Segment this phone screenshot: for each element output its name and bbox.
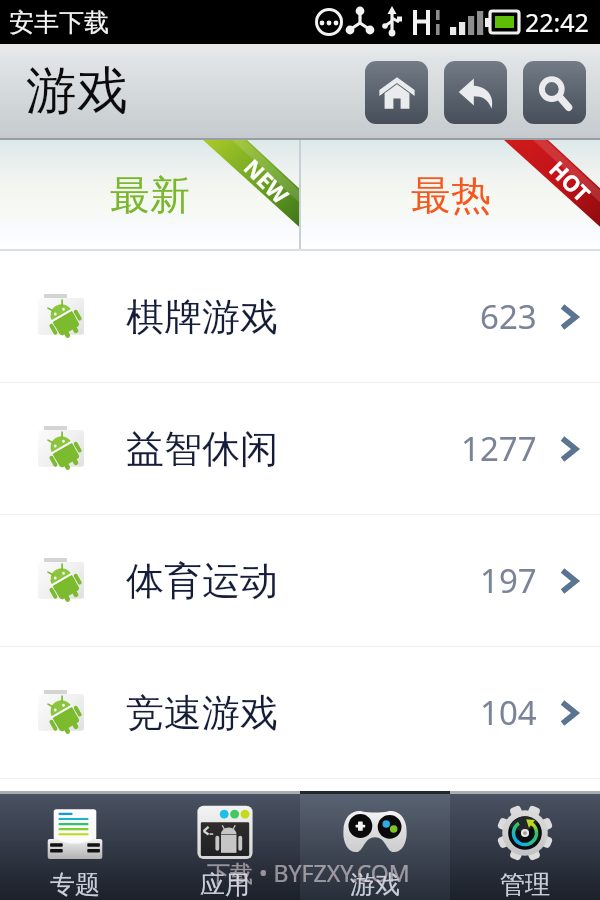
staticText: 22:42 <box>525 5 589 39</box>
staticText: 104 <box>480 690 537 735</box>
button[interactable]: Back <box>444 61 507 124</box>
button[interactable]: 竞速游戏 <box>0 647 600 778</box>
staticText: 管理 <box>500 869 550 900</box>
staticText: 最新 <box>110 170 190 220</box>
button[interactable]: 游戏 <box>300 791 450 900</box>
staticText: 益智休闲 <box>126 425 278 473</box>
staticText: 下载 • BYFZXY.COM <box>207 857 410 888</box>
staticText: 体育运动 <box>126 557 278 605</box>
button[interactable]: 管理 <box>450 791 600 900</box>
staticText: 1277 <box>461 426 537 471</box>
staticText: 安丰下载 <box>9 7 109 38</box>
button[interactable]: 最热 <box>301 140 600 249</box>
button[interactable]: Search <box>523 61 586 124</box>
button[interactable]: 益智休闲 <box>0 383 600 514</box>
staticText: 棋牌游戏 <box>126 293 278 341</box>
staticText: 应用 <box>200 869 250 900</box>
staticText: 197 <box>480 558 537 603</box>
staticText: 最热 <box>411 170 491 220</box>
button[interactable]: 棋牌游戏 <box>0 251 600 382</box>
staticText: NEW <box>238 152 296 210</box>
staticText: HOT <box>543 154 598 208</box>
staticText: 623 <box>480 294 537 339</box>
staticText: 专题 <box>50 869 100 900</box>
button[interactable]: 最新 <box>0 140 299 249</box>
button[interactable]: Home <box>365 61 428 124</box>
button[interactable]: 体育运动 <box>0 515 600 646</box>
staticText: 游戏 <box>350 869 400 900</box>
staticText: 游戏 <box>26 59 128 123</box>
staticText: 竞速游戏 <box>126 689 278 737</box>
button[interactable]: 应用 <box>150 791 300 900</box>
button[interactable]: 专题 <box>0 791 150 900</box>
